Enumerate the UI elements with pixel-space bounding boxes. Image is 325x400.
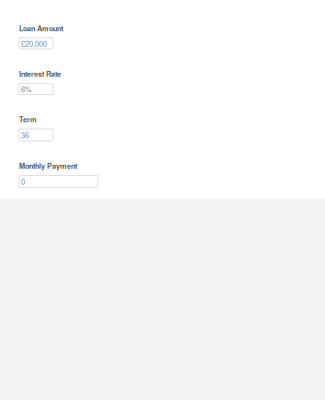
staticText: 6% bbox=[21, 84, 32, 94]
button[interactable]: Term bbox=[19, 129, 53, 141]
staticText: Monthly Payment bbox=[19, 160, 77, 171]
button[interactable]: Monthly Payment bbox=[19, 175, 98, 187]
button[interactable]: Interest Rate bbox=[19, 83, 53, 94]
button[interactable]: Loan Amount bbox=[19, 38, 53, 49]
staticText: £20,000 bbox=[21, 38, 47, 49]
staticText: 0 bbox=[21, 176, 25, 187]
staticText: 36 bbox=[21, 130, 29, 140]
staticText: Loan Amount bbox=[19, 23, 63, 33]
staticText: Term bbox=[19, 114, 37, 124]
staticText: Interest Rate bbox=[19, 68, 61, 79]
